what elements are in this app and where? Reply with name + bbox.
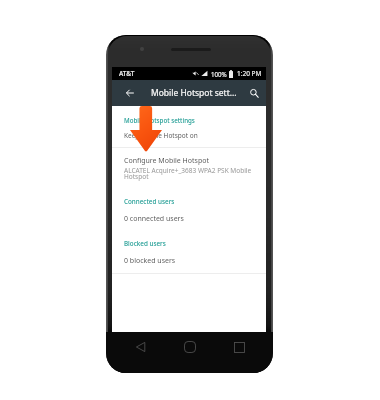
- button[interactable]: Recents: [234, 342, 245, 353]
- staticText: 0 connected users: [124, 214, 184, 224]
- staticText: Keep Mobile Hotspot on: [124, 131, 198, 140]
- button[interactable]: 0 blocked users: [112, 252, 266, 268]
- button[interactable]: Configure Mobile Hotspot: [112, 152, 266, 168]
- button[interactable]: Home: [184, 341, 196, 353]
- staticText: AT&T: [119, 69, 135, 78]
- button[interactable]: Keep Mobile Hotspot on: [112, 127, 266, 143]
- staticText: 0 blocked users: [124, 256, 176, 266]
- staticText: Connected users: [124, 197, 175, 206]
- staticText: 100%: [211, 70, 227, 78]
- staticText: ALCATEL Acquire+_3683 WPA2 PSK Mobile Ho…: [124, 166, 252, 181]
- staticText: Mobile Hotspot sett...: [151, 87, 237, 99]
- button[interactable]: Back: [136, 342, 146, 352]
- button[interactable]: 0 connected users: [112, 210, 266, 226]
- staticText: 1:20 PM: [237, 69, 262, 78]
- button[interactable]: Search: [246, 80, 262, 106]
- staticText: Mobile Hotspot settings: [124, 116, 195, 124]
- button[interactable]: Back: [121, 80, 139, 106]
- staticText: Blocked users: [124, 239, 166, 248]
- staticText: Configure Mobile Hotspot: [124, 156, 209, 166]
